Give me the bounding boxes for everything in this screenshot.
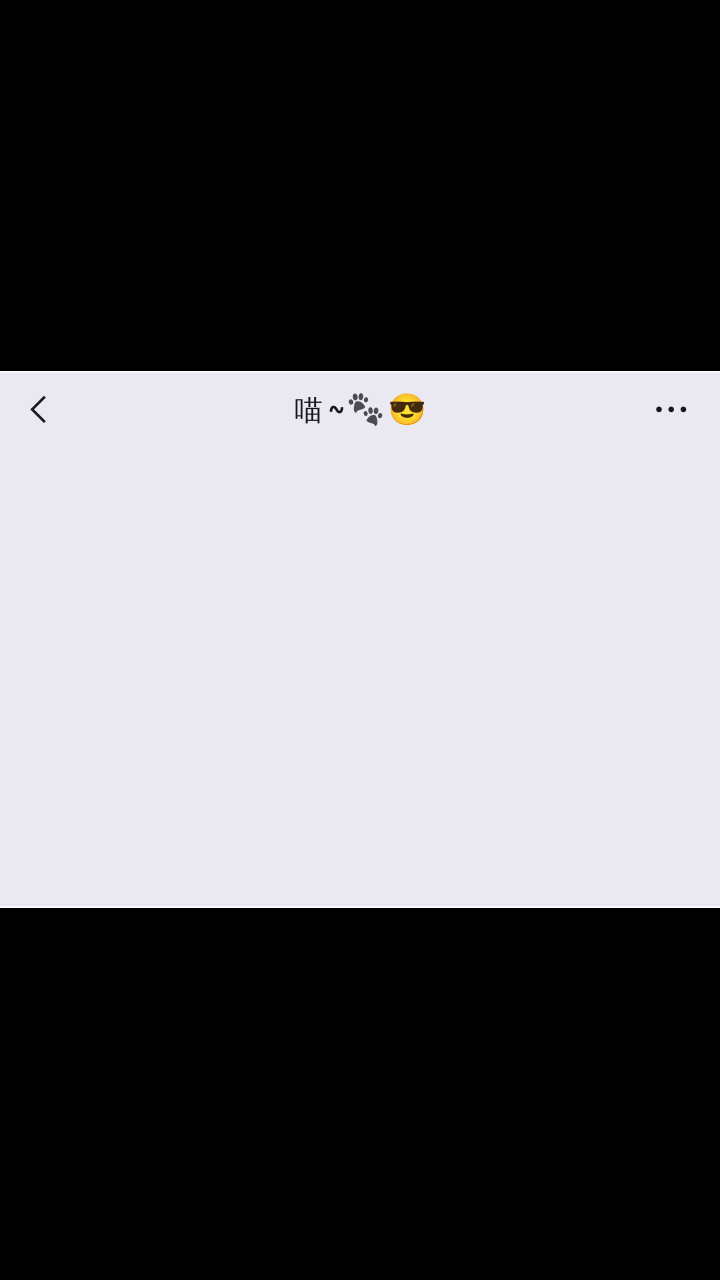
staticText: 😎 xyxy=(387,392,425,427)
staticText: 喵 xyxy=(294,394,322,428)
button[interactable]: Back xyxy=(11,382,65,436)
button[interactable]: More xyxy=(644,382,698,436)
